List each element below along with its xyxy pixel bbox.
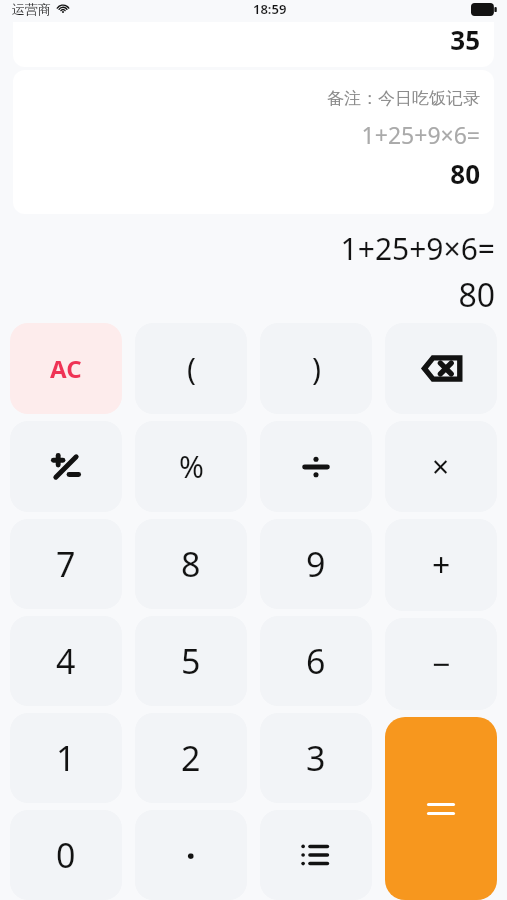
button[interactable]: 1 [10,713,122,803]
staticText: 5 [181,638,201,684]
button[interactable]: 3 [260,713,372,803]
button[interactable]: 7 [10,519,122,609]
staticText: 1+25+9×6= [361,119,480,150]
staticText: 80 [450,156,480,191]
staticText: + [432,543,451,587]
staticText: 35 [450,22,480,57]
staticText: · [186,832,196,878]
staticText: AC [50,352,82,385]
staticText: 0 [56,832,76,878]
button[interactable]: Equals [385,717,497,900]
button[interactable]: Toggle sign [10,421,122,512]
staticText: % [179,446,204,487]
staticText: ( [187,348,196,389]
button[interactable]: 2 [135,713,247,803]
staticText: 7 [56,541,76,587]
staticText: 4 [56,638,76,684]
staticText: 1 [56,735,76,781]
button[interactable]: AC [10,323,122,414]
staticText: 3 [306,735,326,781]
staticText: 6 [306,638,326,684]
button[interactable]: + [385,519,497,611]
button[interactable]: 5 [135,616,247,706]
button[interactable]: Backspace [385,323,497,414]
staticText: 9 [306,541,326,587]
button[interactable]: 0 [10,810,122,900]
staticText: 1+25+9×6= [340,228,495,269]
button[interactable]: History list [260,810,372,900]
staticText: × [432,446,450,487]
button[interactable]: − [385,618,497,710]
button[interactable]: 备注：今日吃饭记录 [13,70,494,214]
button[interactable]: · [135,810,247,900]
staticText: 8 [181,541,201,587]
button[interactable]: ) [260,323,372,414]
staticText: ) [312,348,321,389]
button[interactable]: 4 [10,616,122,706]
staticText: 80 [458,273,495,317]
button[interactable]: × [385,421,497,512]
button[interactable]: ( [135,323,247,414]
button[interactable]: Divide [260,421,372,512]
staticText: 运营商 [12,1,51,17]
button[interactable]: 35 [13,22,494,67]
button[interactable]: 9 [260,519,372,609]
button[interactable]: 6 [260,616,372,706]
staticText: − [432,642,451,686]
staticText: 2 [181,735,201,781]
staticText: 备注：今日吃饭记录 [327,88,480,109]
staticText: 18:59 [253,0,287,18]
button[interactable]: % [135,421,247,512]
button[interactable]: 8 [135,519,247,609]
